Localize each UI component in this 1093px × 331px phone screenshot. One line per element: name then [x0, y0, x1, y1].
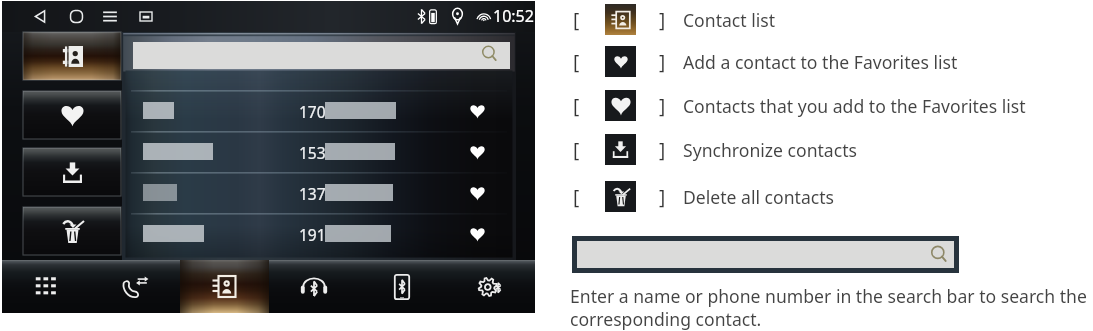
staticText: Contact list: [683, 8, 776, 32]
button[interactable]: 170: [126, 90, 512, 131]
button[interactable]: Home: [68, 8, 85, 25]
button[interactable]: Bluetooth device: [357, 260, 446, 313]
staticText: ]: [659, 49, 666, 75]
button[interactable]: Contact list: [23, 32, 121, 80]
button[interactable]: [133, 42, 510, 69]
button[interactable]: 137: [126, 172, 512, 213]
staticText: [: [573, 137, 580, 163]
button[interactable]: Call history: [91, 260, 180, 313]
staticText: 191: [299, 224, 326, 245]
staticText: Contacts that you add to the Favorites l…: [683, 94, 1026, 118]
staticText: Enter a name or phone number in the sear…: [570, 284, 1087, 331]
staticText: [: [573, 93, 580, 119]
staticText: ]: [659, 184, 666, 210]
staticText: 137: [299, 183, 326, 204]
staticText: 10:52: [493, 5, 534, 27]
button[interactable]: Back: [32, 8, 49, 25]
staticText: Delete all contacts: [683, 185, 835, 209]
staticText: Synchronize contacts: [683, 138, 857, 162]
staticText: Add a contact to the Favorites list: [683, 50, 958, 74]
button[interactable]: Screenshot: [140, 12, 152, 21]
staticText: [: [573, 49, 580, 75]
button[interactable]: Dial pad: [2, 260, 91, 313]
staticText: 170: [299, 101, 326, 122]
staticText: 153: [299, 142, 326, 163]
button[interactable]: Bluetooth settings: [446, 260, 535, 313]
button[interactable]: Favorites list: [23, 91, 121, 139]
staticText: [: [573, 7, 580, 33]
button[interactable]: Delete all contacts: [23, 207, 121, 255]
button[interactable]: Contacts: [180, 260, 269, 313]
button[interactable]: 191: [126, 213, 512, 254]
button[interactable]: Synchronize contacts: [23, 148, 121, 196]
staticText: [: [573, 184, 580, 210]
staticText: ]: [659, 7, 666, 33]
button[interactable]: Bluetooth audio: [269, 260, 358, 313]
button[interactable]: Recent apps: [102, 9, 118, 24]
button[interactable]: 153: [126, 131, 512, 172]
staticText: ]: [659, 93, 666, 119]
staticText: ]: [659, 137, 666, 163]
button[interactable]: [572, 236, 959, 273]
